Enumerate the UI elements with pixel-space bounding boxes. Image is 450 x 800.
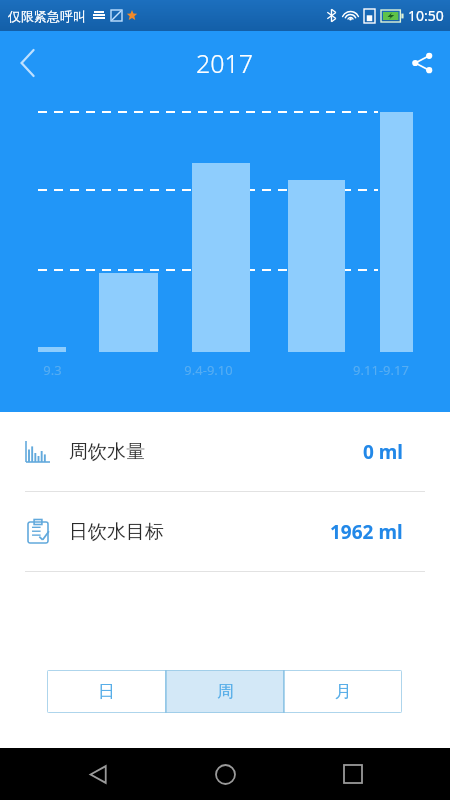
button[interactable]: Back bbox=[68, 748, 128, 800]
staticText: 月 bbox=[335, 681, 352, 702]
staticText: 9.11-9.17 bbox=[353, 361, 409, 379]
button[interactable]: 日饮水目标 bbox=[0, 492, 450, 571]
staticText: 10:50 bbox=[408, 6, 444, 25]
button[interactable]: Recents bbox=[323, 748, 383, 800]
button[interactable]: 周 bbox=[166, 670, 284, 713]
staticText: 1962 ml bbox=[330, 519, 403, 545]
button[interactable]: 日 bbox=[47, 670, 166, 713]
button[interactable]: Home bbox=[195, 748, 255, 800]
staticText: 周 bbox=[217, 681, 234, 702]
staticText: 周饮水量 bbox=[69, 440, 145, 464]
staticText: 仅限紧急呼叫 bbox=[8, 8, 86, 24]
staticText: 9.3 bbox=[43, 361, 62, 379]
button[interactable]: Back bbox=[0, 35, 56, 91]
staticText: 日 bbox=[98, 681, 115, 702]
button[interactable]: Share bbox=[394, 35, 450, 91]
button[interactable]: 周饮水量 bbox=[0, 412, 450, 491]
staticText: 日饮水目标 bbox=[69, 520, 164, 544]
staticText: 9.4-9.10 bbox=[184, 361, 233, 379]
staticText: 2017 bbox=[196, 46, 254, 80]
button[interactable]: 月 bbox=[284, 670, 402, 713]
staticText: 0 ml bbox=[363, 439, 403, 465]
